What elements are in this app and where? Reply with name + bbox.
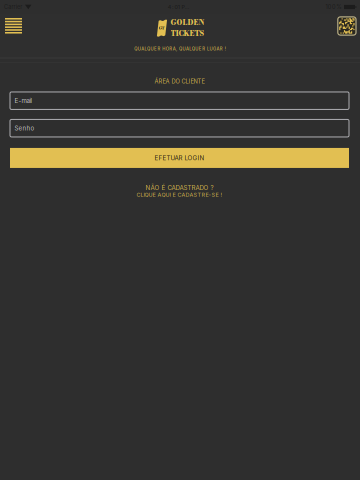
- staticText: EFETUAR LOGIN: [154, 154, 204, 162]
- staticText: 100%: [326, 4, 341, 10]
- staticText: CLIQUE AQUI E CADASTRE-SE !: [136, 191, 222, 198]
- staticText: E-mail: [14, 97, 31, 104]
- staticText: TICKETS: [170, 28, 204, 39]
- staticText: NÃO É CADASTRADO ?: [145, 184, 213, 191]
- button[interactable]: EFETUAR LOGIN: [10, 148, 349, 168]
- button[interactable]: NÃO É CADASTRADO ?: [136, 184, 222, 198]
- button[interactable]: Scan QR code: [328, 14, 360, 42]
- staticText: GOLDEN: [170, 17, 204, 28]
- staticText: GT: [158, 25, 164, 31]
- staticText: 4:01 PM: [168, 4, 189, 10]
- staticText: ÁREA DO CLIENTE: [154, 78, 204, 85]
- staticText: Carrier: [4, 4, 22, 10]
- button[interactable]: Menu: [0, 15, 32, 41]
- staticText: Senho: [14, 124, 34, 132]
- staticText: QUALQUER HORA, QUALQUER LUGAR !: [134, 46, 226, 52]
